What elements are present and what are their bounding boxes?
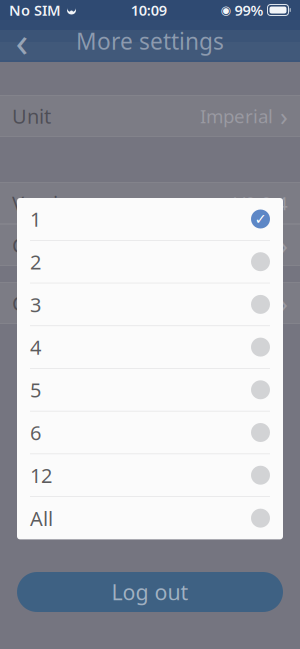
button[interactable]: Cache: [0, 282, 300, 324]
staticText: 3: [30, 291, 41, 318]
staticText: More settings: [76, 26, 224, 56]
staticText: No SIM: [9, 0, 61, 20]
staticText: ›: [280, 286, 288, 320]
button[interactable]: Back: [0, 20, 44, 62]
staticText: V0.0.4: [234, 191, 288, 215]
staticText: ✓: [254, 211, 266, 227]
button[interactable]: All: [17, 497, 283, 539]
button[interactable]: Version: [0, 182, 300, 224]
button[interactable]: 12: [17, 454, 283, 497]
button[interactable]: Changelog: [0, 224, 300, 266]
staticText: 2: [30, 248, 41, 275]
staticText: Cache: [12, 290, 69, 316]
button[interactable]: 1: [17, 198, 283, 241]
button[interactable]: 6: [17, 411, 283, 454]
staticText: 6: [30, 419, 41, 446]
staticText: 4: [30, 334, 41, 360]
button[interactable]: 2: [17, 241, 283, 283]
staticText: 99%: [234, 0, 263, 20]
staticText: Changelog: [12, 232, 112, 258]
staticText: All: [30, 505, 53, 531]
staticText: 10:09: [131, 0, 167, 20]
button[interactable]: Unit: [0, 95, 300, 137]
button[interactable]: 3: [17, 283, 283, 326]
staticText: ›: [280, 99, 288, 133]
staticText: Imperial: [200, 104, 273, 128]
staticText: Unit: [12, 103, 51, 129]
staticText: 5: [30, 376, 41, 403]
button[interactable]: Log out: [17, 572, 283, 612]
button[interactable]: 4: [17, 326, 283, 369]
staticText: 1: [30, 206, 41, 232]
staticText: ›: [280, 228, 288, 262]
staticText: 12: [30, 462, 52, 488]
staticText: Version: [12, 190, 82, 216]
staticText: ‹: [15, 14, 28, 68]
button[interactable]: 5: [17, 369, 283, 411]
staticText: Log out: [111, 578, 188, 606]
staticText: ◉: [220, 3, 230, 17]
